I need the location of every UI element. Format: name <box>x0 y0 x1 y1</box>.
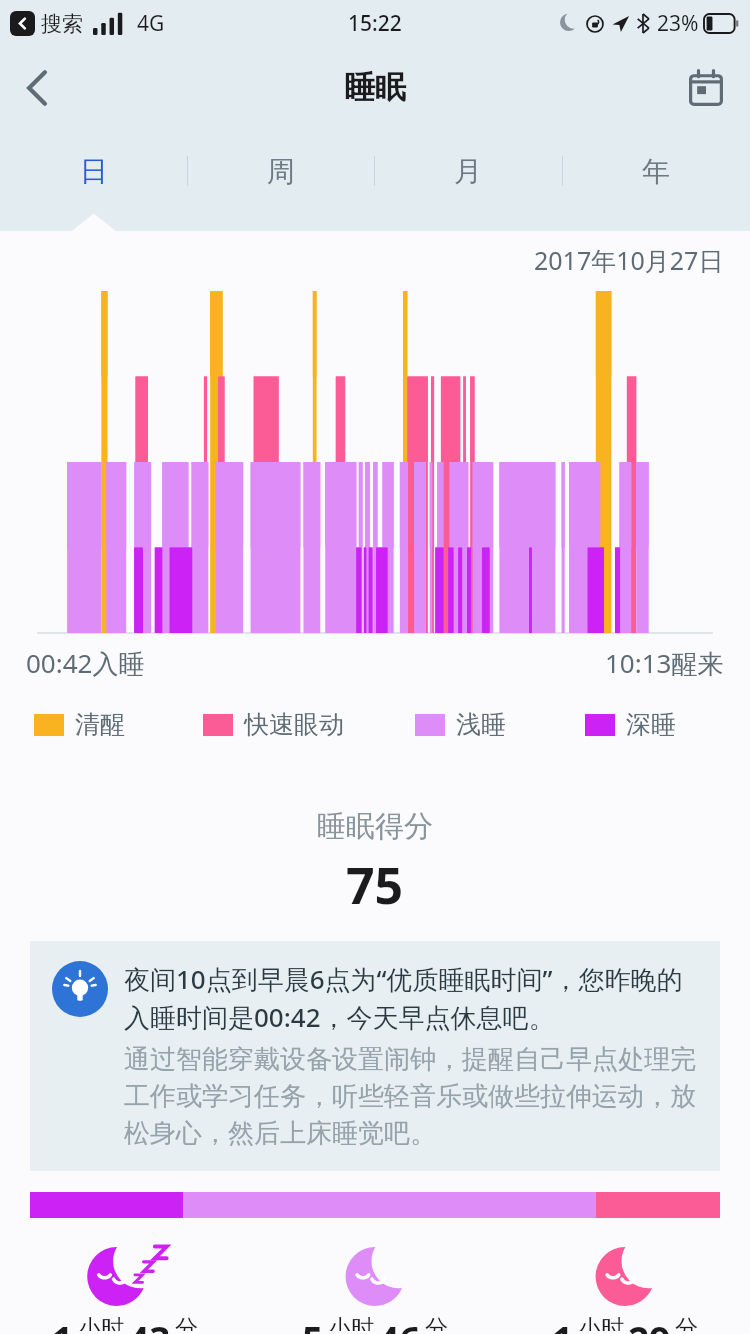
staticText: 1 <box>552 1314 574 1334</box>
button[interactable]: 年 <box>562 129 750 213</box>
staticText: 周 <box>267 154 295 189</box>
staticText: 小时 <box>578 1314 624 1331</box>
staticText: 小时 <box>328 1314 374 1331</box>
staticText: 10:13醒来 <box>605 645 724 681</box>
button[interactable]: 1 <box>500 1242 750 1334</box>
staticText: 43 <box>128 1314 171 1334</box>
button[interactable]: 1 <box>0 1242 250 1334</box>
staticText: 5 <box>302 1314 324 1334</box>
button[interactable]: 日 <box>0 129 187 213</box>
staticText: 快速眼动 <box>244 709 344 740</box>
staticText: 4G <box>137 9 165 38</box>
button[interactable]: Calendar <box>676 58 736 118</box>
button[interactable]: 5 <box>250 1242 500 1334</box>
staticText: 搜索 <box>41 11 83 37</box>
staticText: 75 <box>346 851 404 919</box>
staticText: 1 <box>52 1314 74 1334</box>
staticText: 46 <box>378 1314 421 1334</box>
staticText: 15:22 <box>348 9 402 38</box>
staticText: 分 <box>675 1314 698 1331</box>
staticText: 小时 <box>78 1314 124 1331</box>
button[interactable]: 周 <box>187 129 374 213</box>
staticText: 睡眠 <box>344 68 406 107</box>
staticText: 日 <box>80 154 108 189</box>
button[interactable]: 深睡 <box>585 709 724 740</box>
staticText: 浅睡 <box>456 709 506 740</box>
button[interactable]: Back <box>8 59 66 117</box>
staticText: 夜间10点到早晨6点为“优质睡眠时间”，您昨晚的入睡时间是00:42，今天早点休… <box>124 961 700 1035</box>
button[interactable]: 月 <box>374 129 562 213</box>
button[interactable]: 夜间10点到早晨6点为“优质睡眠时间”，您昨晚的入睡时间是00:42，今天早点休… <box>30 941 720 1171</box>
staticText: 深睡 <box>626 709 676 740</box>
staticText: 23% <box>657 9 699 38</box>
staticText: 月 <box>454 154 482 189</box>
staticText: 2017年10月27日 <box>534 243 724 277</box>
staticText: 分 <box>175 1314 198 1331</box>
staticText: 29 <box>628 1314 671 1334</box>
button[interactable]: 清醒 <box>34 709 203 740</box>
staticText: 通过智能穿戴设备设置闹钟，提醒自己早点处理完工作或学习任务，听些轻音乐或做些拉伸… <box>124 1043 700 1149</box>
button[interactable]: 浅睡 <box>415 709 585 740</box>
button[interactable]: 快速眼动 <box>203 709 415 740</box>
staticText: 睡眠得分 <box>317 808 433 845</box>
staticText: 年 <box>642 154 670 189</box>
staticText: 分 <box>425 1314 448 1331</box>
staticText: 清醒 <box>75 709 125 740</box>
staticText: 00:42入睡 <box>26 645 145 681</box>
